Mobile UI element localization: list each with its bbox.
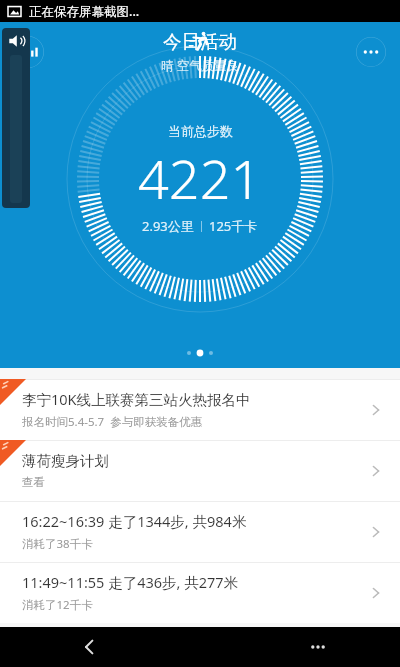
staticText: 正在保存屏幕截图... — [29, 3, 140, 20]
staticText: 2.93公里 — [142, 217, 194, 235]
staticText: 查看 — [22, 475, 45, 489]
staticText: 晴 空气质量良 — [161, 57, 240, 74]
button[interactable]: 16:22~16:39 走了1344步, 共984米 — [0, 501, 400, 562]
button[interactable]: Volume — [2, 28, 30, 208]
button[interactable]: Back — [68, 627, 112, 667]
staticText: 消耗了12千卡 — [22, 597, 93, 613]
staticText: 消耗了38千卡 — [22, 536, 93, 552]
staticText: 16:22~16:39 走了1344步, 共984米 — [22, 511, 247, 531]
staticText: 4221 — [138, 141, 262, 215]
button[interactable]: Statistics — [12, 36, 44, 68]
staticText: 薄荷瘦身计划 — [22, 452, 109, 470]
staticText: 报名时间5.4-5.7 参与即获装备优惠 — [22, 414, 203, 430]
staticText: 125千卡 — [209, 217, 258, 235]
button[interactable]: 薄荷瘦身计划 — [0, 440, 400, 501]
staticText: 李宁10K线上联赛第三站火热报名中 — [22, 389, 251, 409]
button[interactable]: More options — [356, 37, 386, 67]
button[interactable]: 11:49~11:55 走了436步, 共277米 — [0, 562, 400, 623]
staticText: 当前总步数 — [168, 123, 233, 139]
staticText: 今日活动 — [163, 30, 237, 53]
button[interactable]: 李宁10K线上联赛第三站火热报名中 — [0, 379, 400, 440]
staticText: 11:49~11:55 走了436步, 共277米 — [22, 572, 239, 592]
button[interactable]: Menu — [296, 627, 340, 667]
